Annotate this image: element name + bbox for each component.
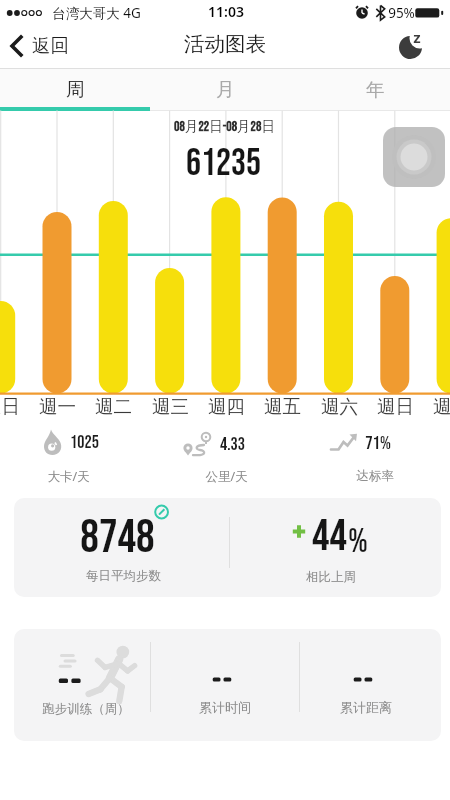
staticText: 4G [123,4,141,22]
staticText: 月 [216,78,235,101]
staticText: 相比上周 [306,569,356,585]
button[interactable]: 年 [300,68,450,111]
staticText: 跑步训练（周） [42,701,130,717]
staticText: z [413,27,421,47]
staticText: 返回 [32,34,69,57]
staticText: 公里/天 [205,468,248,485]
button[interactable] [150,420,300,490]
staticText: 週四 [208,395,245,418]
staticText: 累计距离 [340,699,392,715]
staticText: 台湾大哥大 [52,5,120,22]
staticText: 年 [366,78,385,101]
staticText: 08月22日-08月28日 [174,118,275,135]
staticText: 週日 [377,395,414,418]
button[interactable] [0,420,150,490]
staticText: 週一 [433,395,450,418]
staticText: 每日平均步数 [86,568,161,584]
staticText: 週一 [39,395,76,418]
staticText: 8748 [80,510,155,566]
staticText: 11:03 [208,2,244,21]
staticText: 44 [312,511,347,563]
staticText: 4.33 [220,434,245,456]
staticText: % [348,522,368,562]
button[interactable] [300,420,450,490]
staticText: 61235 [186,141,261,186]
staticText: 95% [388,4,415,22]
staticText: 大卡/天 [47,468,90,485]
staticText: 週日 [0,395,20,418]
staticText: 达标率 [356,468,394,484]
staticText: 71% [365,432,391,454]
staticText: 累计时间 [199,699,251,715]
staticText: 週二 [95,395,132,418]
staticText: 週六 [321,395,358,418]
button[interactable] [14,629,149,740]
staticText: 週三 [152,395,189,418]
button[interactable] [150,629,298,740]
staticText: 1025 [70,432,99,454]
staticText: 周 [66,78,85,101]
staticText: 活动图表 [184,31,266,57]
button[interactable]: z [396,28,430,62]
staticText: 週五 [264,395,301,418]
button[interactable]: 月 [150,68,300,111]
button[interactable] [14,498,441,597]
button[interactable]: 周 [0,68,150,111]
button[interactable]: 返回 [8,28,69,63]
button[interactable] [300,629,440,740]
